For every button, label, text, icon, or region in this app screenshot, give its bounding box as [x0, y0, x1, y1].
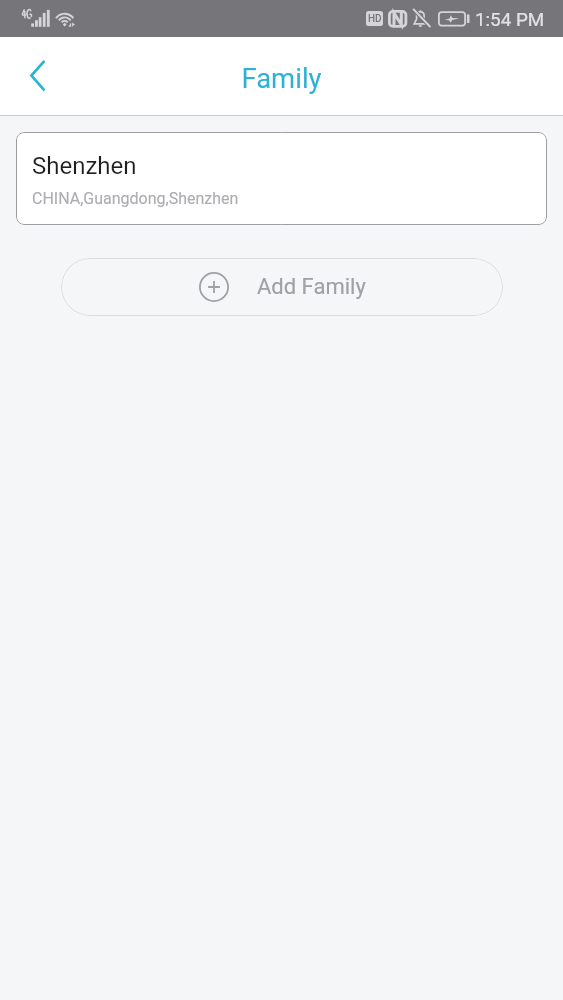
staticText: HD: [368, 13, 382, 25]
staticText: CHINA,Guangdong,Shenzhen: [32, 189, 239, 208]
staticText: 1:54 PM: [475, 9, 545, 31]
button[interactable]: Add Family: [61, 258, 503, 316]
staticText: Family: [241, 62, 322, 94]
button[interactable]: Shenzhen: [16, 132, 547, 225]
staticText: Add Family: [257, 274, 366, 300]
staticText: Shenzhen: [32, 152, 137, 180]
button[interactable]: Back: [6, 45, 68, 107]
